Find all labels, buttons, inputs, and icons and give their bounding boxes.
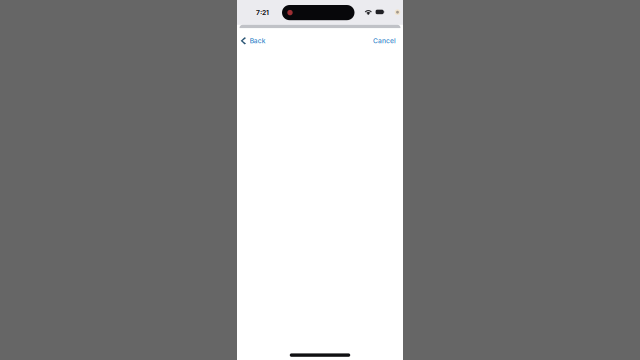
staticText: 7:21 [256,9,269,17]
button[interactable]: Cancel [367,33,403,49]
staticText: Cancel [373,37,396,45]
staticText: Back [250,37,266,45]
button[interactable]: Back [237,33,272,49]
